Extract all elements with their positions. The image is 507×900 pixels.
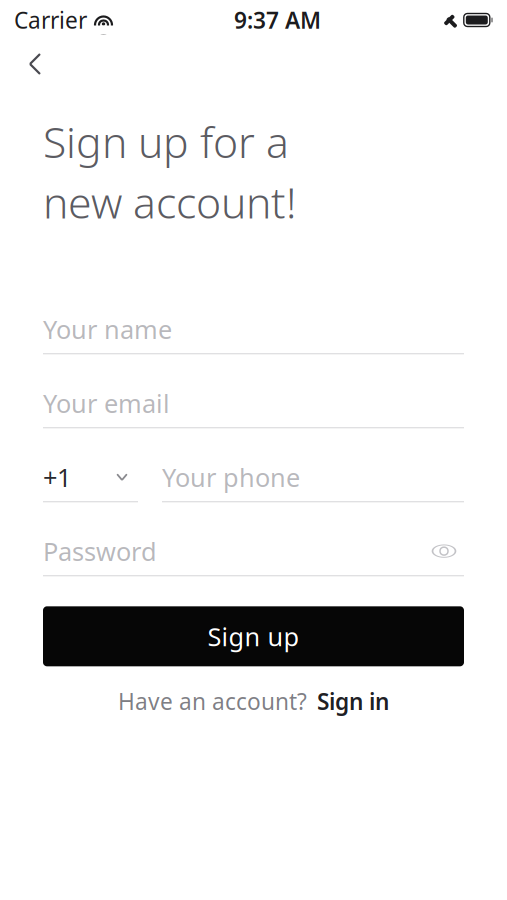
button[interactable]: Show password	[424, 531, 464, 571]
staticText: 9:37 AM	[234, 5, 321, 35]
staticText: Sign in	[317, 686, 389, 716]
button[interactable]: Back	[12, 41, 58, 87]
staticText: Your email	[43, 386, 170, 420]
button[interactable]: Sign in	[317, 686, 389, 716]
staticText: Your phone	[162, 460, 300, 494]
staticText: Sign up for a	[43, 113, 289, 170]
staticText: Carrier	[14, 5, 87, 35]
staticText: Have an account?	[118, 686, 307, 716]
staticText: Sign up	[207, 619, 299, 653]
staticText: Password	[43, 534, 157, 568]
button[interactable]: Sign up	[43, 606, 464, 666]
staticText: new account!	[43, 174, 296, 230]
staticText: Your name	[43, 312, 172, 346]
button[interactable]: +1	[43, 453, 138, 502]
staticText: +1	[43, 460, 71, 494]
